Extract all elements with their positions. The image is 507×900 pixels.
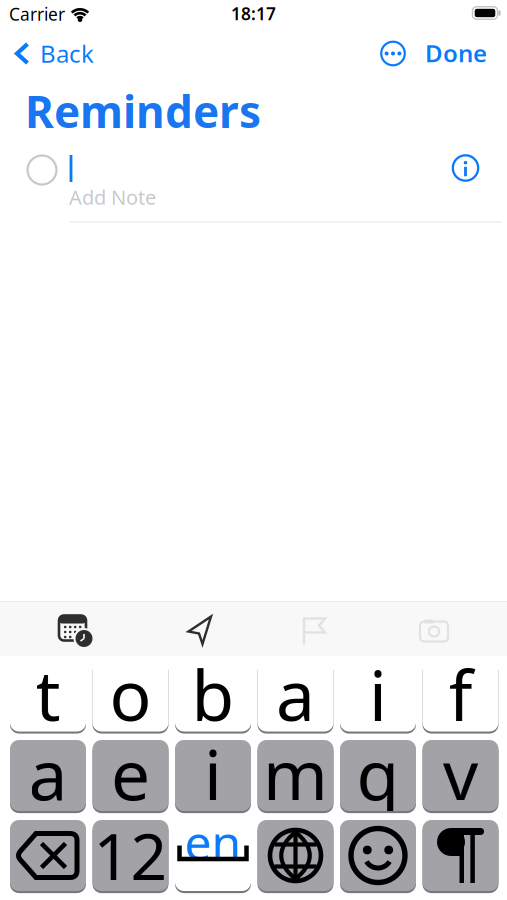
staticText: Reminders: [25, 82, 261, 140]
button[interactable]: Delete: [9, 818, 87, 892]
button[interactable]: t: [9, 659, 87, 733]
staticText: i: [369, 648, 387, 740]
button[interactable]: English: [174, 818, 252, 892]
staticText: v: [443, 727, 478, 820]
button[interactable]: Done: [425, 37, 487, 69]
button[interactable]: Return: [421, 818, 499, 892]
button[interactable]: Complete: [27, 155, 56, 184]
staticText: 12: [93, 813, 167, 898]
staticText: t: [35, 648, 60, 740]
button[interactable]: Details: [453, 155, 478, 181]
button[interactable]: Add date: [58, 614, 92, 646]
button[interactable]: m: [256, 738, 334, 812]
button[interactable]: Emoji: [339, 818, 417, 892]
button[interactable]: Back: [0, 38, 94, 69]
button[interactable]: Next keyboard: [256, 818, 334, 892]
staticText: i: [204, 727, 222, 820]
button[interactable]: v: [421, 738, 499, 812]
staticText: a: [276, 648, 315, 740]
staticText: f: [448, 648, 472, 740]
staticText: 18:17: [231, 2, 276, 25]
button[interactable]: e: [91, 738, 169, 812]
button[interactable]: a: [9, 738, 87, 812]
staticText: q: [356, 727, 399, 820]
button[interactable]: i: [174, 738, 252, 812]
staticText: m: [263, 727, 328, 820]
button[interactable]: a: [256, 659, 334, 733]
button[interactable]: Add location: [187, 615, 213, 646]
button[interactable]: More: [379, 39, 407, 67]
staticText: b: [191, 648, 234, 740]
staticText: a: [28, 727, 67, 820]
button[interactable]: f: [421, 659, 499, 733]
staticText: e: [111, 727, 150, 820]
staticText: Done: [425, 37, 487, 69]
staticText: en: [184, 810, 241, 874]
staticText: Back: [40, 38, 94, 69]
button[interactable]: q: [339, 738, 417, 812]
staticText: o: [109, 648, 151, 740]
staticText: Carrier: [9, 2, 65, 25]
button[interactable]: o: [91, 659, 169, 733]
staticText: Add Note: [69, 184, 156, 210]
button[interactable]: Numbers: [91, 818, 169, 892]
button[interactable]: Add photo: [419, 618, 449, 642]
button[interactable]: b: [174, 659, 252, 733]
button[interactable]: Flag: [301, 616, 329, 644]
button[interactable]: i: [339, 659, 417, 733]
